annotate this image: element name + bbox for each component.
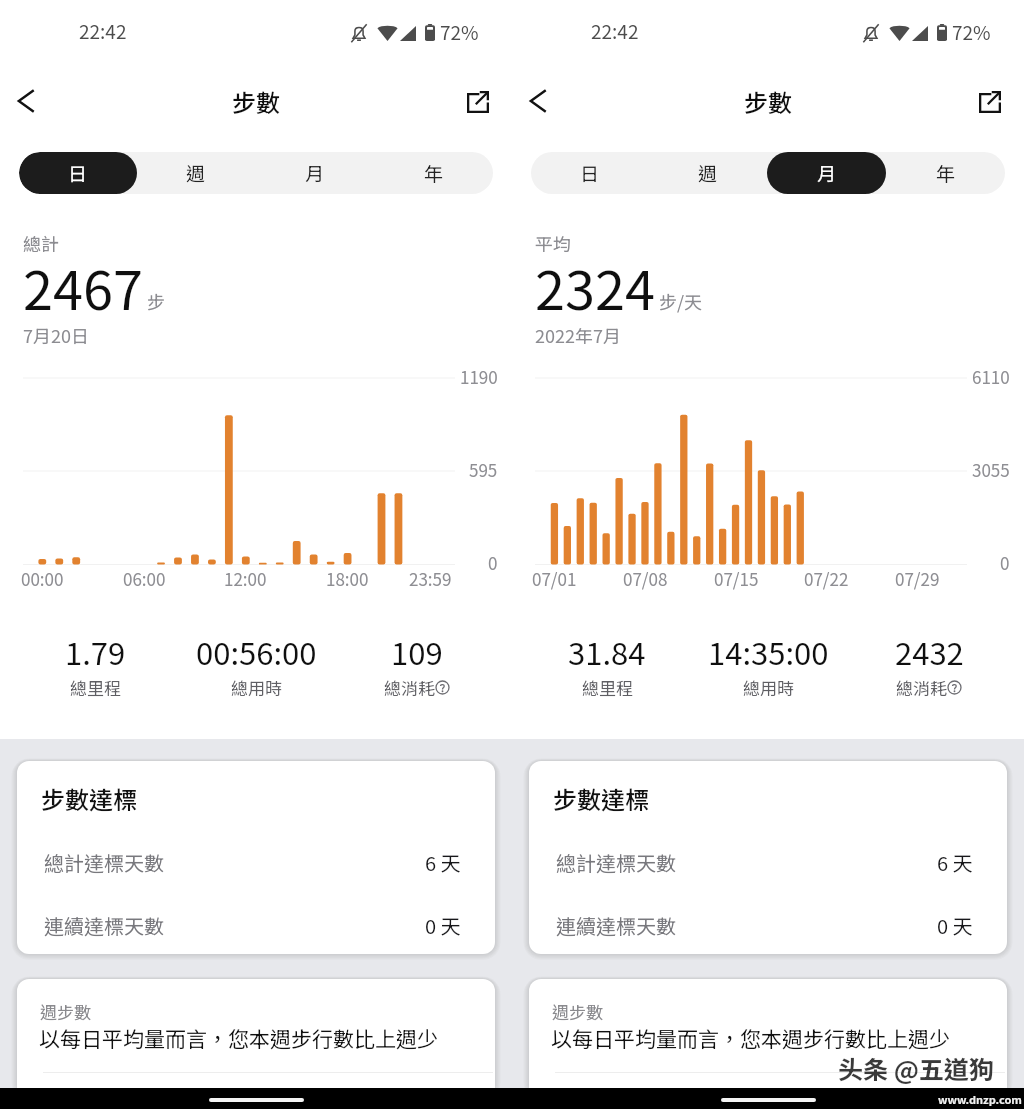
staticText: 7月20日 bbox=[23, 322, 89, 348]
staticText: 3055 bbox=[972, 457, 1010, 482]
button[interactable]: 週 bbox=[649, 152, 767, 194]
button[interactable]: 年 bbox=[374, 152, 493, 194]
staticText: 6 天 bbox=[425, 848, 461, 877]
staticText: 步/天 bbox=[659, 288, 703, 314]
staticText: 1.79 bbox=[65, 629, 126, 674]
button[interactable]: 14:35:00 bbox=[673, 629, 863, 700]
staticText: 日 bbox=[68, 159, 88, 187]
staticText: 步數 bbox=[744, 84, 792, 119]
staticText: 07/01 bbox=[532, 566, 577, 591]
button[interactable]: 月 bbox=[255, 152, 374, 194]
staticText: 週 bbox=[186, 159, 206, 187]
staticText: 總計達標天數 bbox=[44, 848, 164, 877]
staticText: 月 bbox=[817, 159, 837, 187]
staticText: 72% bbox=[952, 18, 991, 46]
button[interactable]: 31.84 bbox=[512, 629, 702, 700]
staticText: 2432 bbox=[895, 629, 964, 674]
staticText: 22:42 bbox=[79, 17, 127, 45]
button[interactable]: 年 bbox=[886, 152, 1005, 194]
staticText: 2324 bbox=[535, 247, 655, 325]
staticText: 31.84 bbox=[568, 629, 646, 674]
staticText: 步數 bbox=[232, 84, 280, 119]
staticText: 總消耗 bbox=[384, 675, 435, 700]
staticText: 07/08 bbox=[623, 566, 668, 591]
button[interactable]: 連續達標天數 bbox=[556, 906, 973, 944]
staticText: 0 天 bbox=[937, 911, 973, 940]
button[interactable]: 2432 bbox=[834, 629, 1024, 700]
staticText: 6110 bbox=[972, 364, 1010, 389]
staticText: 6 天 bbox=[937, 848, 973, 877]
staticText: 週步數 bbox=[40, 999, 91, 1024]
staticText: 週 bbox=[698, 159, 718, 187]
button[interactable]: 00:56:00 bbox=[161, 629, 351, 700]
button[interactable]: Share bbox=[968, 80, 1012, 124]
staticText: 06:00 bbox=[123, 566, 166, 591]
staticText: 22:42 bbox=[591, 17, 639, 45]
staticText: 00:00 bbox=[21, 566, 64, 591]
staticText: 月 bbox=[305, 159, 325, 187]
staticText: 平均 bbox=[535, 230, 571, 256]
staticText: 年 bbox=[936, 159, 956, 187]
staticText: 總用時 bbox=[743, 675, 794, 700]
staticText: 00:56:00 bbox=[196, 629, 317, 674]
button[interactable]: 日 bbox=[19, 152, 137, 194]
staticText: 步數達標 bbox=[41, 781, 137, 816]
staticText: 2022年7月 bbox=[535, 322, 621, 348]
staticText: 日 bbox=[580, 159, 600, 187]
staticText: 23:59 bbox=[409, 566, 452, 591]
staticText: 07/29 bbox=[895, 566, 940, 591]
staticText: 0 bbox=[488, 550, 498, 575]
staticText: 595 bbox=[469, 457, 498, 482]
staticText: 以每日平均量而言，您本週步行數比上週少 bbox=[551, 1023, 950, 1053]
staticText: 年 bbox=[424, 159, 444, 187]
button[interactable]: 連續達標天數 bbox=[44, 906, 461, 944]
button[interactable]: 週 bbox=[137, 152, 255, 194]
button[interactable]: 109 bbox=[322, 629, 512, 700]
staticText: 總里程 bbox=[70, 675, 121, 700]
staticText: 头条 @五道狗 bbox=[838, 1050, 994, 1086]
staticText: 總里程 bbox=[582, 675, 633, 700]
button[interactable]: 月 bbox=[767, 152, 886, 194]
staticText: 12:00 bbox=[224, 566, 267, 591]
button[interactable]: 1.79 bbox=[0, 629, 190, 700]
staticText: 2467 bbox=[23, 247, 143, 325]
staticText: 以每日平均量而言，您本週步行數比上週少 bbox=[39, 1023, 438, 1053]
button[interactable]: Share bbox=[456, 80, 500, 124]
button[interactable]: Back bbox=[4, 79, 48, 123]
staticText: 總計 bbox=[23, 230, 59, 256]
staticText: 步數達標 bbox=[553, 781, 649, 816]
staticText: 72% bbox=[440, 18, 479, 46]
staticText: 14:35:00 bbox=[708, 629, 829, 674]
staticText: 總計達標天數 bbox=[556, 848, 676, 877]
staticText: 07/15 bbox=[714, 566, 759, 591]
staticText: 0 bbox=[1000, 550, 1010, 575]
staticText: 週步數 bbox=[552, 999, 603, 1024]
staticText: 連續達標天數 bbox=[44, 911, 164, 940]
button[interactable]: Back bbox=[516, 79, 560, 123]
staticText: 1190 bbox=[460, 364, 498, 389]
staticText: 0 天 bbox=[425, 911, 461, 940]
staticText: 總用時 bbox=[231, 675, 282, 700]
staticText: 07/22 bbox=[804, 566, 849, 591]
button[interactable]: 總計達標天數 bbox=[44, 843, 461, 881]
staticText: 18:00 bbox=[326, 566, 369, 591]
staticText: www.dnzp.com bbox=[938, 1091, 1022, 1107]
button[interactable]: 日 bbox=[531, 152, 649, 194]
button[interactable]: 總計達標天數 bbox=[556, 843, 973, 881]
staticText: 109 bbox=[391, 629, 443, 674]
staticText: 步 bbox=[147, 288, 165, 314]
staticText: 總消耗 bbox=[896, 675, 947, 700]
staticText: 連續達標天數 bbox=[556, 911, 676, 940]
